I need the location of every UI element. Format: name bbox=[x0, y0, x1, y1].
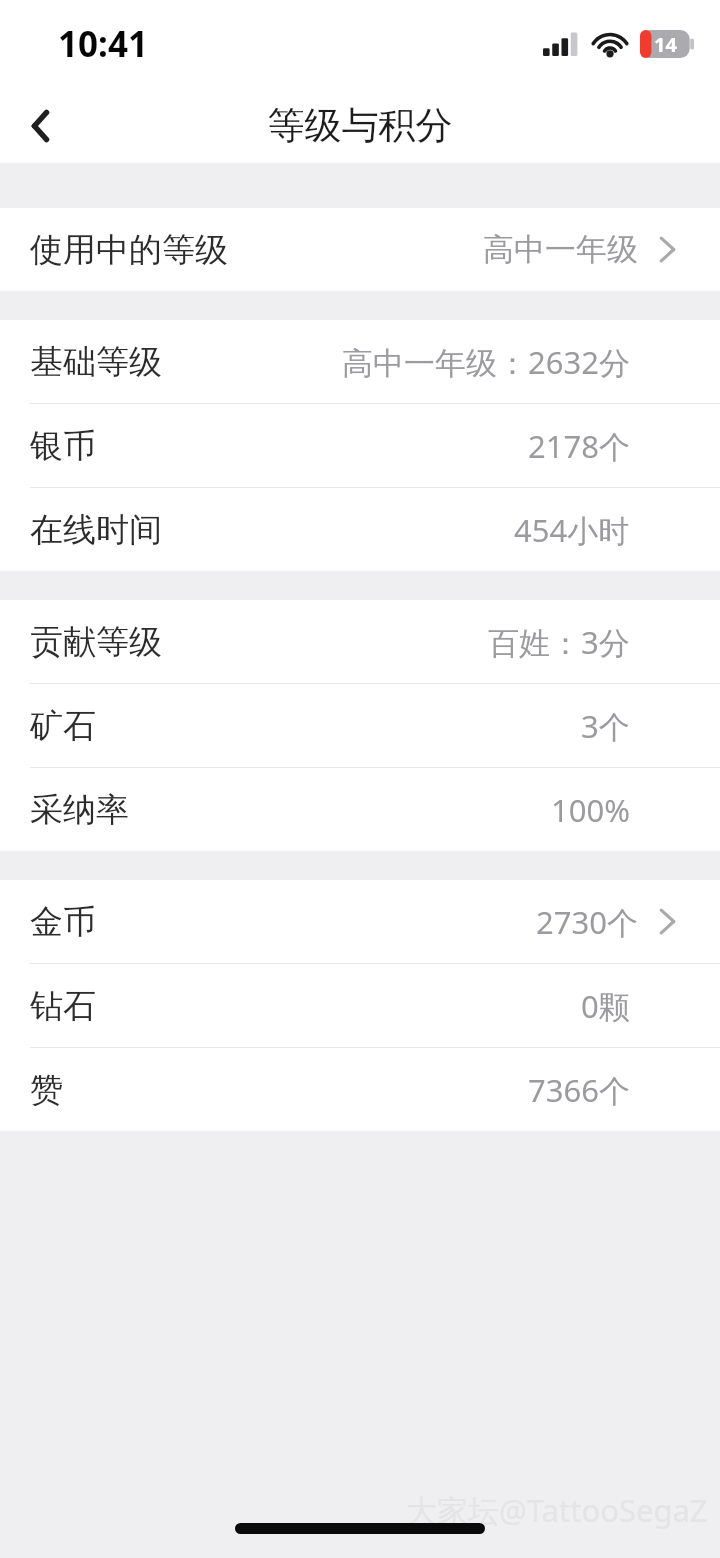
staticText: 银币 bbox=[30, 425, 96, 467]
staticText: 3个 bbox=[581, 705, 630, 747]
button[interactable]: 采纳率 bbox=[0, 768, 720, 851]
staticText: 采纳率 bbox=[30, 789, 129, 831]
staticText: 2730个 bbox=[536, 901, 638, 943]
staticText: 赞 bbox=[30, 1069, 63, 1111]
staticText: 等级与积分 bbox=[0, 102, 720, 149]
staticText: 矿石 bbox=[30, 705, 96, 747]
staticText: 金币 bbox=[30, 901, 96, 943]
staticText: 百姓：3分 bbox=[488, 621, 630, 663]
button[interactable]: 在线时间 bbox=[0, 488, 720, 571]
staticText: 在线时间 bbox=[30, 509, 162, 551]
button[interactable]: 钻石 bbox=[0, 964, 720, 1047]
button[interactable]: 金币 bbox=[0, 880, 720, 963]
staticText: 0颗 bbox=[581, 985, 630, 1027]
staticText: 基础等级 bbox=[30, 341, 162, 383]
staticText: 10:41 bbox=[58, 20, 148, 68]
staticText: 100% bbox=[551, 789, 630, 831]
staticText: 2178个 bbox=[528, 425, 630, 467]
button[interactable]: 银币 bbox=[0, 404, 720, 487]
staticText: 大家坛@TattooSegaZ bbox=[406, 1489, 708, 1531]
button[interactable]: Back bbox=[0, 88, 80, 163]
staticText: 高中一年级 bbox=[483, 230, 638, 269]
staticText: 7366个 bbox=[528, 1069, 630, 1111]
staticText: 高中一年级：2632分 bbox=[342, 341, 630, 383]
button[interactable]: 使用中的等级 bbox=[0, 208, 720, 291]
staticText: 454小时 bbox=[514, 509, 630, 551]
staticText: 使用中的等级 bbox=[30, 229, 228, 271]
staticText: 钻石 bbox=[30, 985, 96, 1027]
staticText: 贡献等级 bbox=[30, 621, 162, 663]
button[interactable]: 贡献等级 bbox=[0, 600, 720, 683]
button[interactable]: 基础等级 bbox=[0, 320, 720, 403]
button[interactable]: 矿石 bbox=[0, 684, 720, 767]
button[interactable]: 赞 bbox=[0, 1048, 720, 1131]
staticText: 14 bbox=[654, 31, 677, 58]
